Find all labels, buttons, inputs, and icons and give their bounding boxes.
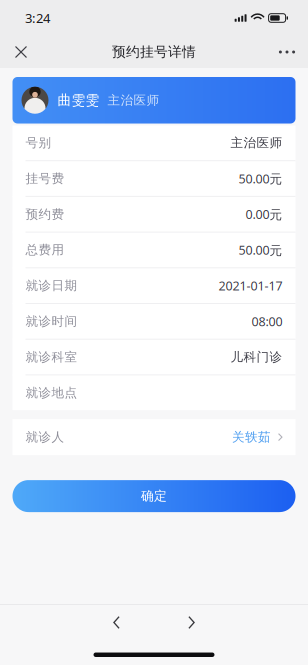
button[interactable]: Forward (169, 605, 213, 640)
staticText: 就诊时间 (25, 313, 77, 329)
button[interactable]: More options (266, 36, 308, 68)
staticText: 确定 (141, 488, 167, 504)
staticText: 50.00元 (238, 170, 282, 187)
staticText: 主治医师 (107, 92, 159, 108)
staticText: 挂号费 (25, 171, 64, 186)
staticText: 预约挂号详情 (112, 43, 196, 61)
staticText: 就诊地点 (25, 385, 77, 401)
button[interactable]: Back (94, 605, 138, 640)
staticText: 0.00元 (245, 206, 282, 223)
staticText: 2021-01-17 (218, 277, 282, 294)
button[interactable]: 就诊人 (12, 419, 295, 455)
staticText: 儿科门诊 (230, 349, 282, 365)
staticText: 曲雯雯 (57, 92, 99, 109)
staticText: 总费用 (25, 242, 64, 258)
staticText: 08:00 (251, 313, 282, 330)
staticText: 50.00元 (238, 241, 282, 258)
staticText: 3:24 (25, 9, 50, 27)
staticText: 号别 (25, 135, 51, 151)
staticText: 主治医师 (230, 135, 282, 151)
staticText: 就诊日期 (25, 278, 77, 294)
button[interactable]: 确定 (12, 480, 295, 512)
staticText: 就诊人 (25, 429, 64, 445)
button[interactable]: Close (0, 36, 42, 68)
staticText: 预约费 (25, 206, 64, 222)
staticText: 关轶茹 (232, 429, 271, 445)
staticText: 就诊科室 (25, 349, 77, 365)
